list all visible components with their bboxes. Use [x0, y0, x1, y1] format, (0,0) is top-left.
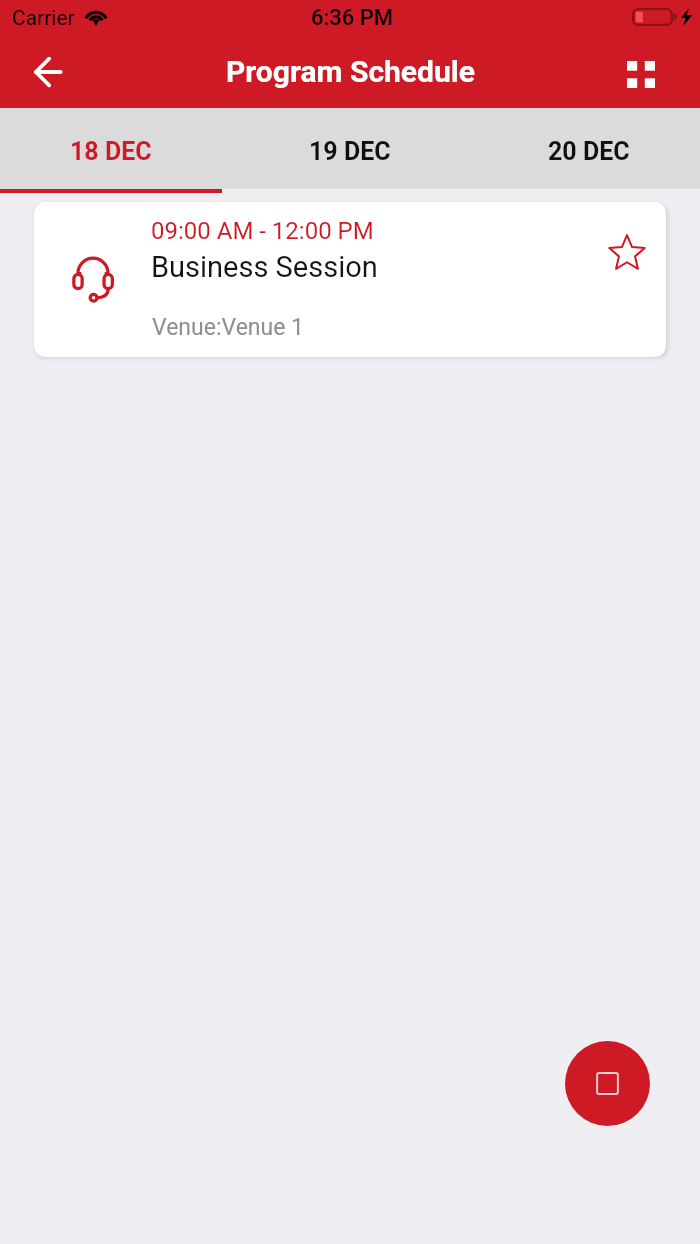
button[interactable]: Favorite	[608, 234, 646, 272]
staticText: Venue:Venue 1	[152, 314, 305, 341]
button[interactable]: Grid view	[613, 46, 669, 102]
button[interactable]: Back	[20, 44, 76, 100]
staticText: Carrier	[12, 6, 75, 31]
button[interactable]: 18 DEC	[0, 108, 222, 189]
staticText: Program Schedule	[226, 54, 475, 89]
button[interactable]: 19 DEC	[222, 108, 478, 189]
staticText: 18 DEC	[70, 137, 152, 166]
staticText: 19 DEC	[309, 137, 391, 166]
staticText: 09:00 AM - 12:00 PM	[151, 217, 374, 245]
button[interactable]: 09:00 AM - 12:00 PM	[34, 202, 666, 357]
button[interactable]: 20 DEC	[478, 108, 700, 189]
staticText: 20 DEC	[548, 137, 630, 166]
staticText: Business Session	[151, 250, 378, 284]
button[interactable]: Stop	[565, 1041, 650, 1126]
staticText: 6:36 PM	[311, 5, 394, 31]
